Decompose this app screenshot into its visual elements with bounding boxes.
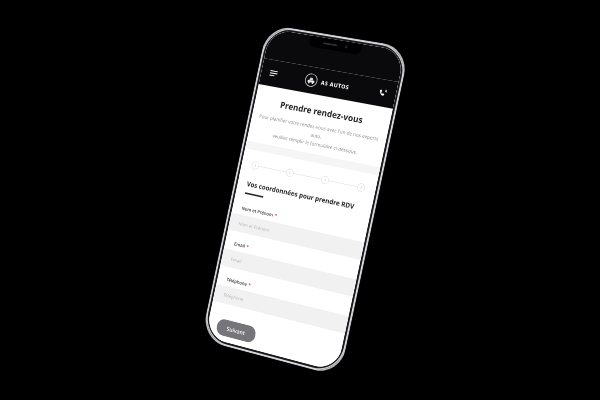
button[interactable]: Téléphone	[213, 284, 349, 334]
staticText: Nom et Prénom	[241, 205, 274, 218]
staticText: Pour planifier votre rendez-vous avec l'…	[254, 112, 380, 159]
staticText: Vos coordonnées pour prendre RDV	[246, 179, 355, 211]
button[interactable]: Email	[220, 248, 356, 297]
button[interactable]: Call	[375, 85, 390, 101]
button[interactable]: Nom et Prénom	[228, 213, 364, 260]
staticText: *	[248, 281, 251, 288]
button[interactable]: AS AUTOS	[304, 72, 351, 94]
staticText: Suivant	[226, 324, 246, 337]
staticText: AS AUTOS	[320, 78, 350, 91]
staticText: Téléphone	[223, 291, 244, 302]
staticText: Email	[230, 256, 242, 264]
staticText: Prendre rendez-vous	[254, 94, 391, 131]
staticText: *	[274, 212, 278, 218]
staticText: Nom et Prénom	[238, 220, 270, 233]
button[interactable]: Menu	[266, 66, 281, 81]
staticText: *	[246, 243, 249, 250]
staticText: Email	[234, 240, 246, 249]
button[interactable]: Suivant	[215, 317, 257, 344]
staticText: Téléphone	[226, 276, 248, 287]
